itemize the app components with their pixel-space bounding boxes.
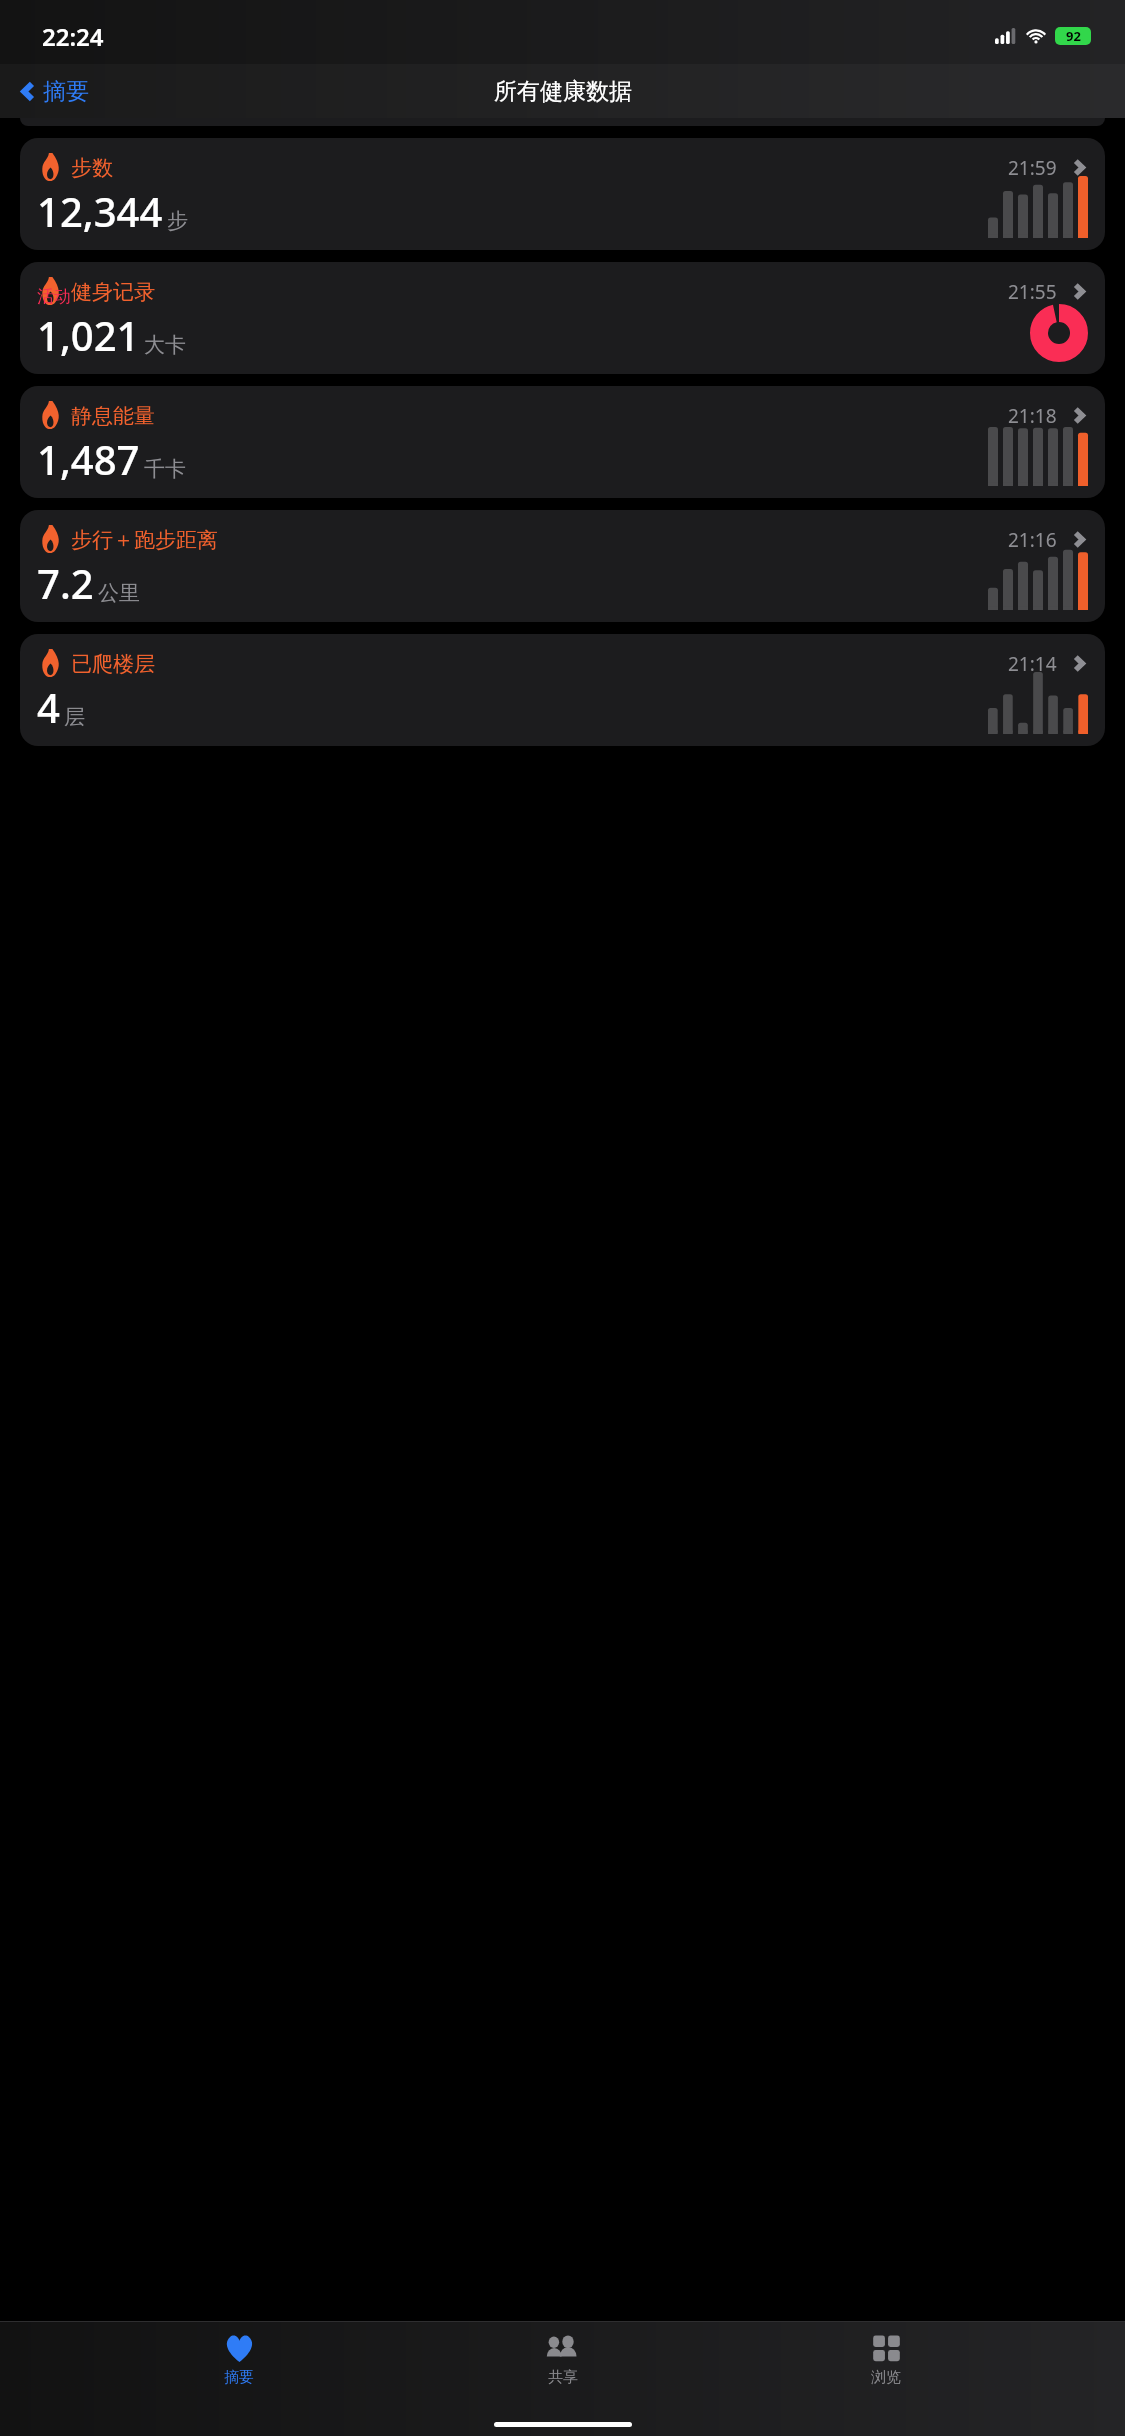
staticText: 1,021 bbox=[37, 308, 140, 362]
staticText: 大卡 bbox=[144, 332, 186, 358]
staticText: 7.2 bbox=[37, 556, 94, 610]
staticText: 步数 bbox=[71, 155, 113, 181]
staticText: 摘要 bbox=[224, 2368, 254, 2387]
button[interactable]: 步行＋跑步距离 bbox=[20, 510, 1105, 622]
staticText: 21:14 bbox=[1008, 651, 1057, 677]
staticText: 步 bbox=[167, 208, 188, 234]
staticText: 活动 bbox=[37, 286, 71, 307]
staticText: 12,344 bbox=[37, 184, 163, 238]
button[interactable]: 共享 bbox=[478, 2331, 648, 2391]
staticText: 92 bbox=[1066, 27, 1081, 45]
staticText: 浏览 bbox=[871, 2368, 901, 2387]
staticText: 21:16 bbox=[1008, 527, 1057, 553]
staticText: 层 bbox=[64, 704, 85, 730]
staticText: 所有健康数据 bbox=[494, 77, 632, 106]
staticText: 1,487 bbox=[37, 432, 140, 486]
staticText: 21:55 bbox=[1008, 279, 1057, 305]
staticText: 摘要 bbox=[43, 77, 89, 106]
staticText: 21:18 bbox=[1008, 403, 1057, 429]
staticText: 已爬楼层 bbox=[71, 651, 155, 677]
staticText: 千卡 bbox=[144, 456, 186, 482]
staticText: 4 bbox=[37, 680, 60, 734]
staticText: 静息能量 bbox=[71, 403, 155, 429]
button[interactable]: 摘要 bbox=[154, 2331, 324, 2391]
staticText: 共享 bbox=[548, 2368, 578, 2387]
button[interactable]: 健身记录 bbox=[20, 262, 1105, 374]
staticText: 22:24 bbox=[42, 20, 104, 53]
staticText: 21:59 bbox=[1008, 155, 1057, 181]
button[interactable]: 摘要 bbox=[12, 74, 95, 109]
staticText: 公里 bbox=[98, 580, 140, 606]
staticText: 步行＋跑步距离 bbox=[71, 527, 218, 553]
button[interactable]: 静息能量 bbox=[20, 386, 1105, 498]
staticText: 健身记录 bbox=[71, 279, 155, 305]
button[interactable]: 已爬楼层 bbox=[20, 634, 1105, 746]
button[interactable]: 步数 bbox=[20, 138, 1105, 250]
button[interactable]: 浏览 bbox=[801, 2331, 971, 2391]
